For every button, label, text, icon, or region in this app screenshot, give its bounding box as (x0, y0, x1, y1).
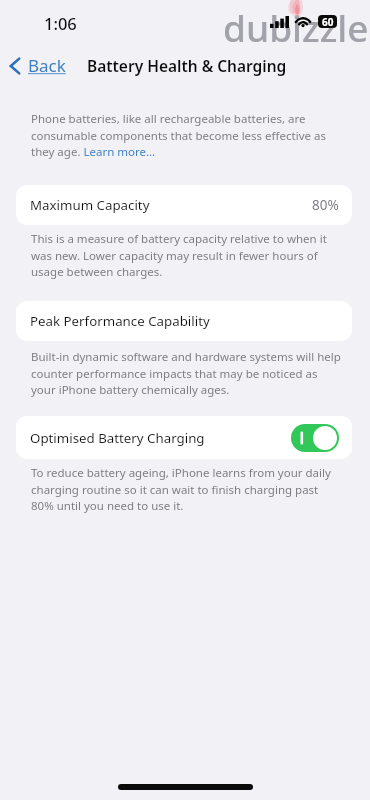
staticText: Optimised Battery Charging (30, 429, 205, 447)
staticText: This is a measure of battery capacity re… (31, 231, 342, 279)
staticText: Phone batteries, like all rechargeable b… (31, 111, 342, 159)
staticText: Battery Health & Charging (87, 55, 287, 76)
staticText: Built-in dynamic software and hardware s… (31, 349, 342, 397)
other: Back (9, 57, 21, 75)
staticText: 1:06 (44, 12, 77, 34)
staticText: dubizzle (223, 2, 369, 52)
button[interactable]: Optimised Battery Charging toggle (291, 424, 339, 452)
staticText: Peak Performance Capability (30, 312, 210, 330)
staticText: Back (28, 54, 66, 77)
staticText: To reduce battery ageing, iPhone learns … (31, 465, 342, 513)
button[interactable]: Optimised Battery Charging (16, 416, 352, 459)
staticText: 60 (322, 15, 334, 28)
staticText: 80% (312, 196, 339, 214)
staticText: Maximum Capacity (30, 196, 150, 214)
button[interactable]: Maximum Capacity (16, 185, 352, 225)
button[interactable]: Peak Performance Capability (16, 301, 352, 341)
button[interactable]: Back (9, 54, 66, 77)
